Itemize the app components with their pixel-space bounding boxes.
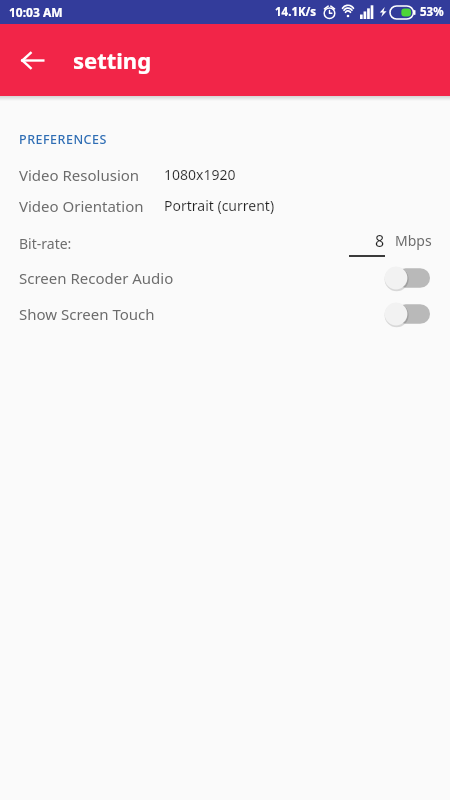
staticText: Mbps [395, 231, 432, 250]
button[interactable]: Video Resolusion [0, 159, 450, 190]
staticText: 8 [375, 230, 385, 252]
button[interactable]: Back [10, 38, 54, 82]
staticText: Video Orientation [19, 196, 144, 216]
staticText: Video Resolusion [19, 165, 140, 185]
button[interactable]: Screen Recoder Audio [0, 260, 450, 296]
staticText: 10:03 AM [9, 4, 63, 20]
staticText: 1080x1920 [164, 165, 236, 184]
staticText: Bit-rate: [19, 234, 72, 253]
staticText: Screen Recoder Audio [19, 268, 174, 288]
staticText: 14.1K/s [275, 4, 317, 20]
button[interactable]: Bit-rate: [0, 226, 450, 260]
staticText: setting [73, 45, 152, 75]
button[interactable]: Show Screen Touch [384, 302, 430, 326]
button[interactable]: Show Screen Touch [0, 296, 450, 332]
button[interactable]: Video Orientation [0, 190, 450, 221]
staticText: 53% [420, 4, 444, 20]
button[interactable]: Screen Recoder Audio [384, 266, 430, 290]
staticText: PREFERENCES [19, 131, 107, 148]
staticText: Portrait (current) [164, 196, 275, 215]
staticText: Show Screen Touch [19, 304, 155, 324]
